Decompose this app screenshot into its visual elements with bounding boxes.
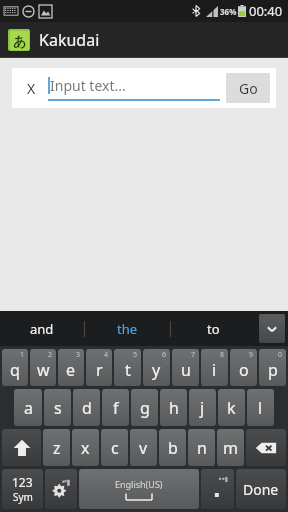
button[interactable]: 4 [86,349,112,386]
staticText: the [117,320,138,338]
staticText: Sym [13,490,33,504]
staticText: and [30,320,54,338]
staticText: z [53,437,61,459]
button[interactable]: c [101,429,128,466]
staticText: 0 [278,350,283,360]
staticText: k [227,397,236,419]
staticText: あ [13,33,27,49]
staticText: 5 [133,350,138,360]
staticText: 3 [76,350,81,360]
staticText: c [111,437,119,459]
staticText: Done [243,480,279,499]
button[interactable]: d [73,389,100,426]
staticText: q [10,359,20,381]
staticText: 2 [48,350,53,360]
button[interactable]: English(US) [79,469,199,509]
staticText: 8 [220,350,225,360]
staticText: 4 [104,350,109,360]
staticText: p [268,359,278,381]
button[interactable]: 123 [2,469,43,509]
staticText: x [81,437,90,459]
button[interactable]: 9 [230,349,257,386]
button[interactable]: 5 [114,349,141,386]
staticText: 123 [12,474,33,490]
staticText: f [113,397,119,419]
staticText: e [66,359,76,381]
button[interactable]: k [218,389,245,426]
button[interactable]: the [85,311,170,346]
button[interactable]: 1 [2,349,28,386]
staticText: d [82,397,92,419]
button[interactable]: a [14,389,42,426]
button[interactable]: f [102,389,129,426]
staticText: h [169,397,179,419]
staticText: r [96,359,103,381]
button[interactable]: 0 [259,349,286,386]
staticText: u [181,359,191,381]
staticText: m [223,437,238,459]
staticText: Go [239,79,258,98]
button[interactable]: Expand suggestions [259,314,285,343]
staticText: i [212,359,217,381]
button[interactable]: 6 [143,349,170,386]
button[interactable]: l [247,389,274,426]
button[interactable]: 8 [201,349,228,386]
staticText: w [37,359,50,381]
button[interactable]: 7 [172,349,199,386]
button[interactable]: Backspace [246,429,286,466]
staticText: X [27,79,36,98]
button[interactable]: v [130,429,157,466]
staticText: 36% [220,6,237,17]
staticText: g [140,397,150,419]
button[interactable]: h [160,389,187,426]
staticText: o [239,359,249,381]
button[interactable]: x [72,429,99,466]
button[interactable]: to [171,311,256,346]
staticText: Input text... [50,76,126,95]
button[interactable]: g [131,389,158,426]
button[interactable]: X [18,75,44,101]
button[interactable]: Go [226,73,270,103]
button[interactable]: Done [236,469,286,509]
button[interactable]: m [217,429,244,466]
button[interactable]: 3 [58,349,84,386]
staticText: y [152,359,161,381]
staticText: 7 [191,350,196,360]
staticText: s [54,397,62,419]
button[interactable]: Shift [2,429,41,466]
staticText: 6 [162,350,167,360]
button[interactable]: and [0,311,84,346]
staticText: 00:40 [249,2,283,20]
staticText: b [168,437,178,459]
button[interactable] [201,469,234,509]
staticText: a [24,397,33,419]
staticText: 9 [249,350,254,360]
staticText: English(US) [115,478,163,490]
button[interactable]: z [43,429,70,466]
staticText: l [258,397,263,419]
button[interactable]: Input text... [48,76,220,101]
button[interactable]: n [188,429,215,466]
button[interactable]: j [189,389,216,426]
button[interactable]: Settings [45,469,77,509]
staticText: j [200,397,205,419]
button[interactable]: s [44,389,71,426]
staticText: Kakudai [39,29,100,51]
staticText: n [197,437,207,459]
staticText: to [207,320,220,338]
button[interactable]: b [159,429,186,466]
staticText: t [125,359,131,381]
button[interactable]: 2 [30,349,56,386]
staticText: v [139,437,148,459]
staticText: 1 [20,350,25,360]
